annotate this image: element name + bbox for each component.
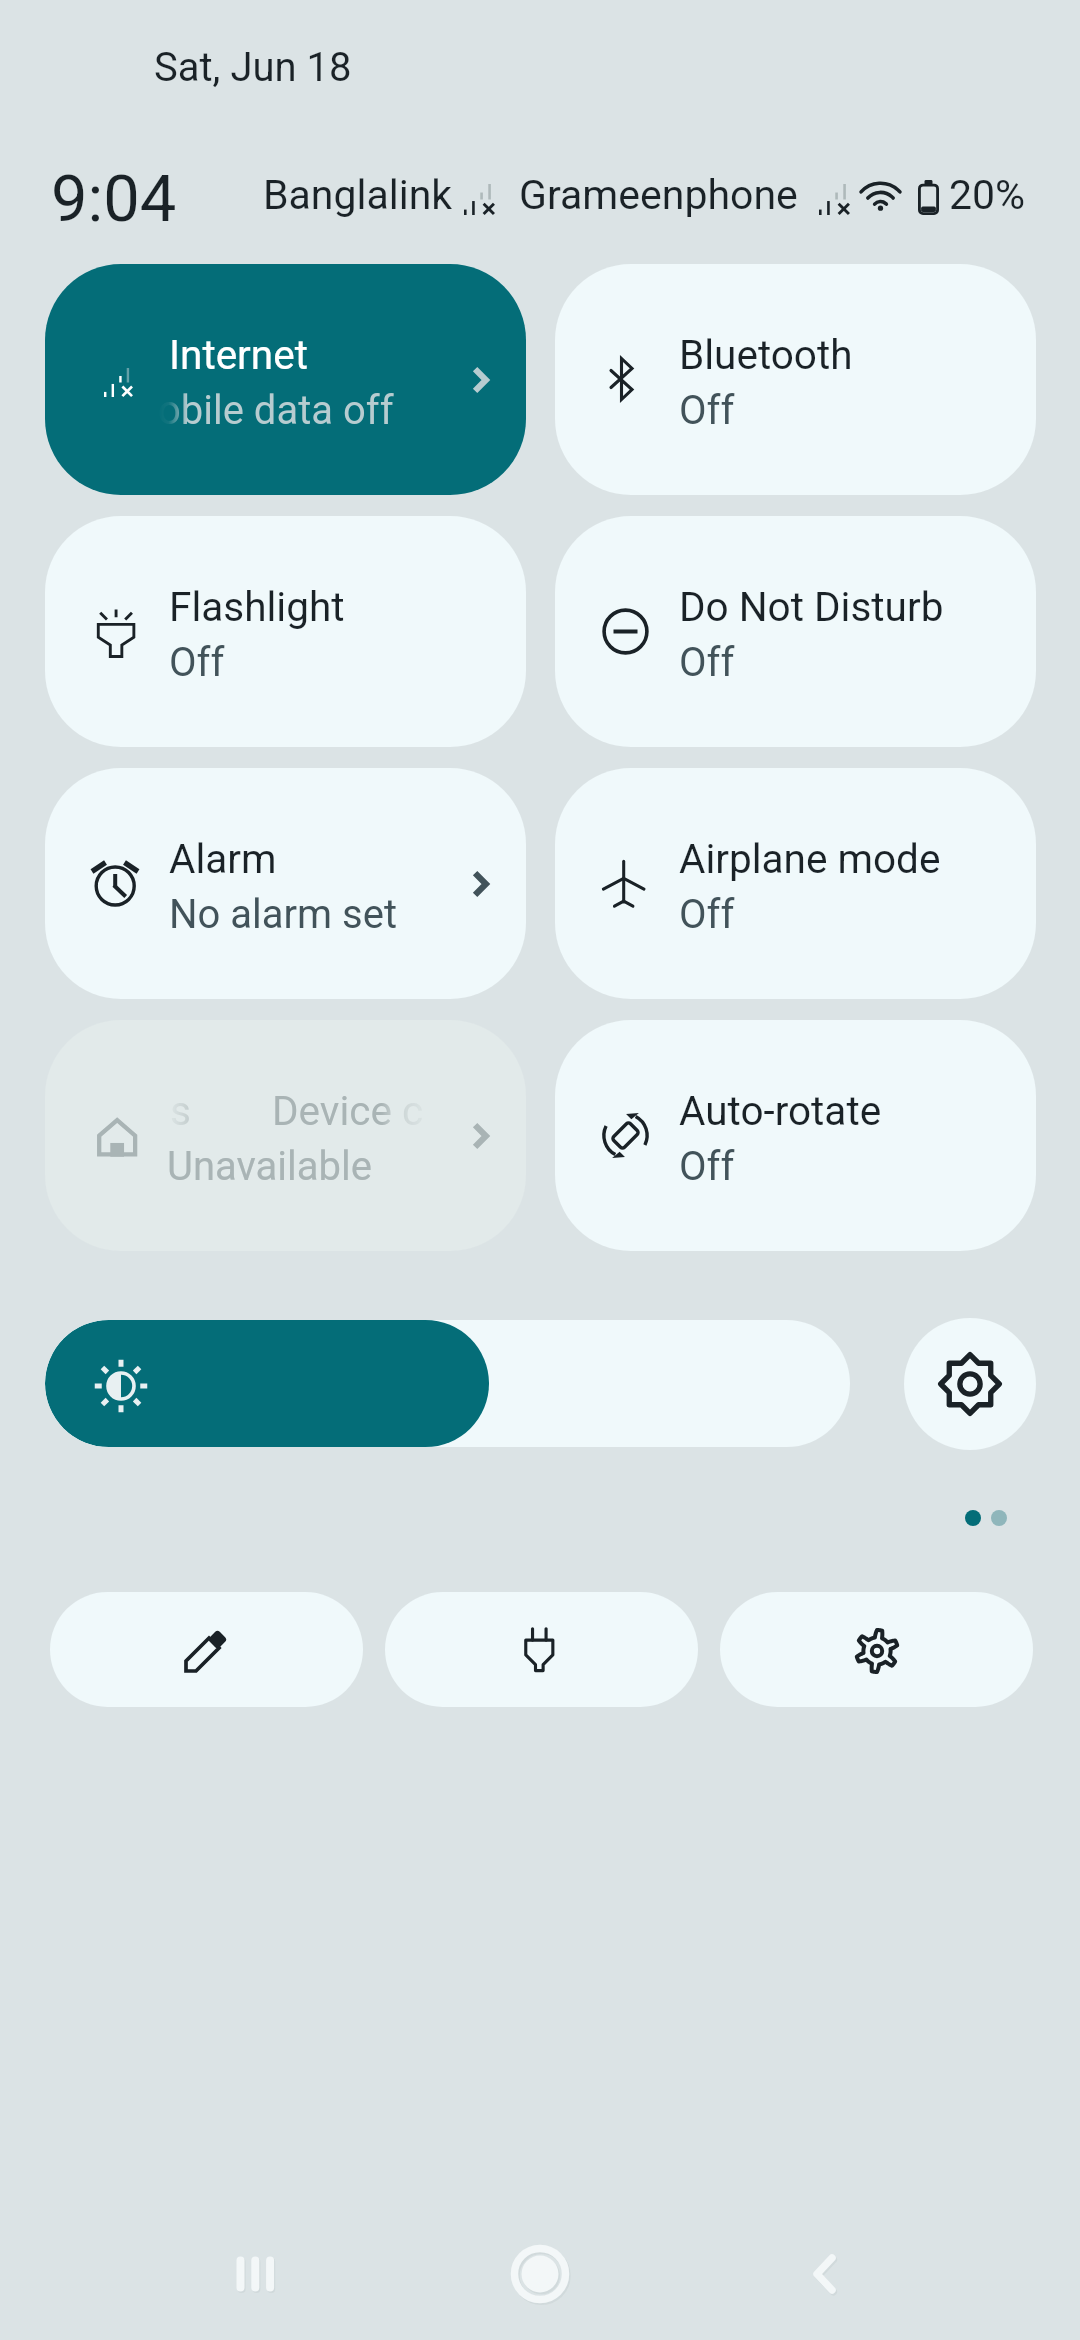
staticText: Flashlight xyxy=(169,583,345,630)
button[interactable]: Settings xyxy=(720,1592,1033,1707)
staticText: Alarm xyxy=(169,835,277,882)
staticText: Internet xyxy=(169,331,308,378)
button[interactable]: Power off xyxy=(385,1592,698,1707)
staticText: Sat, Jun 18 xyxy=(154,44,352,91)
staticText: No alarm set xyxy=(169,891,398,938)
staticText: Off xyxy=(679,639,735,686)
staticText: Device c xyxy=(272,1087,424,1134)
button[interactable]: Edit xyxy=(50,1592,363,1707)
button[interactable]: Back xyxy=(738,2214,918,2334)
staticText: Auto-rotate xyxy=(679,1087,882,1134)
button[interactable]: Airplane mode xyxy=(555,768,1036,999)
staticText: Off xyxy=(169,639,225,686)
staticText: Off xyxy=(679,387,735,434)
button[interactable]: Auto brightness xyxy=(904,1318,1036,1450)
button[interactable]: Auto-rotate xyxy=(555,1020,1036,1251)
staticText: Grameenphone xyxy=(519,171,798,219)
staticText: s xyxy=(170,1087,191,1134)
staticText: Do Not Disturb xyxy=(679,583,944,630)
button[interactable]: Internet xyxy=(45,264,526,495)
staticText: Bluetooth xyxy=(679,331,853,378)
staticText: Off xyxy=(679,1143,735,1190)
staticText: 20% xyxy=(949,171,1026,219)
staticText: Unavailable xyxy=(167,1143,372,1190)
button[interactable]: Recents xyxy=(163,2214,343,2334)
staticText: Off xyxy=(679,891,735,938)
staticText: 9:04 xyxy=(51,161,177,237)
button[interactable]: Bluetooth xyxy=(555,264,1036,495)
button[interactable]: Home xyxy=(450,2214,630,2334)
staticText: obile data off xyxy=(158,387,394,434)
button[interactable]: Flashlight xyxy=(45,516,526,747)
button[interactable]: Brightness xyxy=(45,1320,850,1447)
staticText: Banglalink xyxy=(263,171,453,219)
button[interactable]: Alarm xyxy=(45,768,526,999)
staticText: Airplane mode xyxy=(679,835,941,882)
button[interactable]: Do Not Disturb xyxy=(555,516,1036,747)
button[interactable]: Device c xyxy=(45,1020,526,1251)
